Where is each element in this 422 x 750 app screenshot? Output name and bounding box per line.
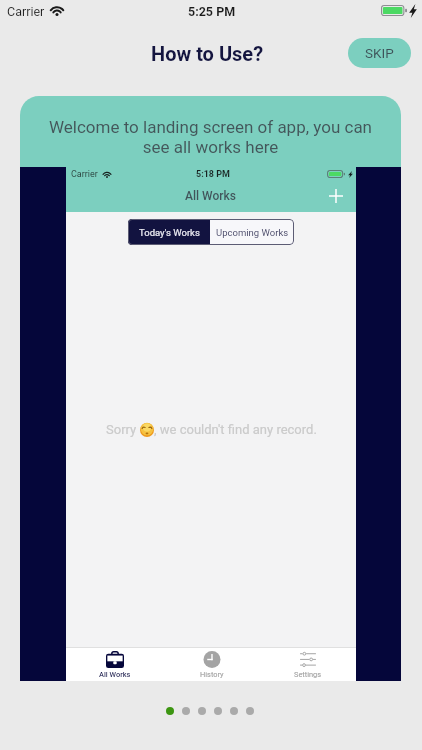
button[interactable]: History: [163, 651, 260, 681]
staticText: 5:18 PM: [196, 169, 230, 180]
staticText: Upcoming Works: [216, 227, 289, 238]
button[interactable]: SKIP: [348, 38, 411, 68]
staticText: , we couldn't find any record.: [154, 422, 317, 437]
staticText: History: [200, 670, 224, 679]
staticText: Welcome to landing screen of app, you ca…: [40, 117, 381, 157]
staticText: Carrier: [71, 169, 98, 180]
staticText: Sorry: [106, 422, 140, 437]
button[interactable]: Upcoming Works: [210, 219, 294, 245]
staticText: Carrier: [7, 4, 45, 19]
staticText: All Works: [185, 189, 237, 203]
staticText: All Works: [99, 670, 131, 679]
button[interactable]: Add: [329, 189, 343, 203]
button[interactable]: All Works: [66, 651, 163, 681]
staticText: 5:25 PM: [188, 4, 236, 19]
staticText: Today's Works: [139, 227, 200, 238]
staticText: How to Use?: [151, 42, 264, 65]
button[interactable]: Today's Works: [128, 219, 210, 245]
staticText: SKIP: [365, 45, 394, 61]
button[interactable]: Settings: [259, 651, 356, 681]
staticText: Settings: [294, 670, 321, 679]
